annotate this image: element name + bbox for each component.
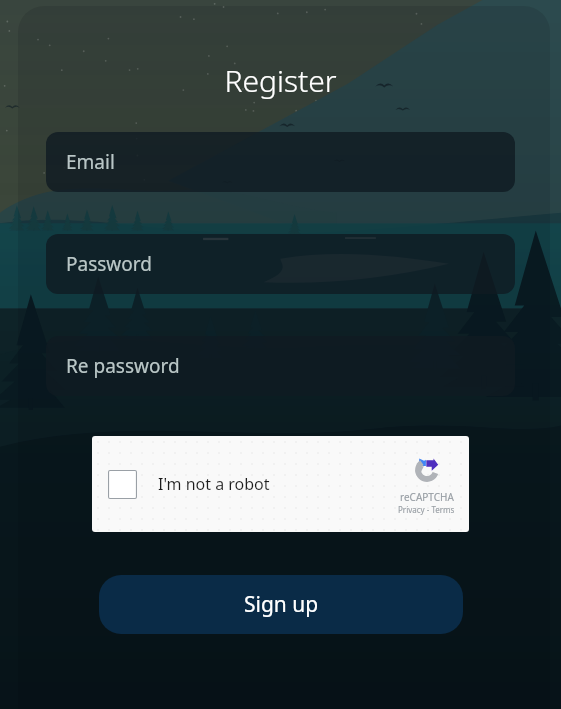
button[interactable]: I'm not a robot checkbox [108,470,137,499]
button[interactable]: Sign up [99,575,463,634]
staticText: Sign up [244,590,319,619]
staticText: Register [224,60,337,101]
staticText: Privacy - Terms [398,504,455,515]
button[interactable]: I'm not a robot checkbox [92,436,469,532]
button[interactable]: Re password [46,336,515,396]
staticText: I'm not a robot [158,473,270,495]
staticText: Email [66,149,115,175]
button[interactable]: Email [46,132,515,192]
button[interactable]: Password [46,234,515,294]
staticText: Re password [66,353,180,379]
staticText: reCAPTCHA [400,490,454,504]
staticText: Password [66,251,152,277]
